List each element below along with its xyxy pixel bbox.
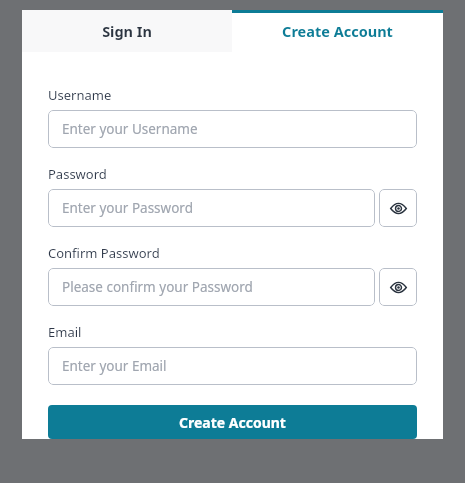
staticText: Please confirm your Password <box>62 278 253 296</box>
staticText: Create Account <box>282 21 393 41</box>
staticText: Enter your Password <box>62 199 193 217</box>
button[interactable]: Sign In <box>22 10 232 52</box>
button[interactable]: Create Account <box>232 10 443 52</box>
button[interactable]: Enter your Password <box>48 189 375 227</box>
button[interactable]: Enter your Username <box>48 110 417 148</box>
button[interactable]: Show password <box>379 268 417 306</box>
button[interactable]: Show password <box>379 189 417 227</box>
staticText: Create Account <box>179 413 286 432</box>
button[interactable]: Please confirm your Password <box>48 268 375 306</box>
staticText: Email <box>48 323 82 341</box>
staticText: Enter your Username <box>62 120 198 138</box>
staticText: Enter your Email <box>62 357 167 375</box>
staticText: Sign In <box>102 21 152 41</box>
button[interactable]: Create Account <box>48 405 417 439</box>
staticText: Password <box>48 165 107 183</box>
staticText: Username <box>48 86 112 104</box>
staticText: Confirm Password <box>48 244 160 262</box>
button[interactable]: Enter your Email <box>48 347 417 385</box>
